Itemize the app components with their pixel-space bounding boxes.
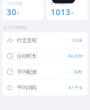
button[interactable]: 行走里程 <box>2 32 87 48</box>
staticText: 8.1 千卡 <box>68 85 82 90</box>
staticText: 累计里程 <box>50 1 66 6</box>
staticText: 运动时长 <box>17 53 37 59</box>
button[interactable]: 累计里程 <box>46 0 87 20</box>
staticText: 步 <box>17 11 20 15</box>
staticText: 平均配速 <box>17 69 37 75</box>
staticText: 平均消耗 <box>17 84 37 91</box>
staticText: 456 分钟 <box>67 53 82 59</box>
staticText: 123 米 <box>71 37 82 43</box>
staticText: 行走里程 <box>17 37 37 43</box>
staticText: 1013 <box>50 7 70 17</box>
button[interactable]: 平均配速 <box>2 64 87 80</box>
button[interactable]: 今日步数 <box>2 0 43 20</box>
staticText: 30 秒 <box>73 69 82 74</box>
button[interactable]: 运动时长 <box>2 48 87 64</box>
button[interactable]: 平均消耗 <box>2 80 87 95</box>
staticText: 今日步数 <box>6 1 22 6</box>
staticText: 米 <box>71 11 74 15</box>
staticText: 30 <box>6 7 16 17</box>
staticText: 本月运动数据 <box>3 25 27 30</box>
